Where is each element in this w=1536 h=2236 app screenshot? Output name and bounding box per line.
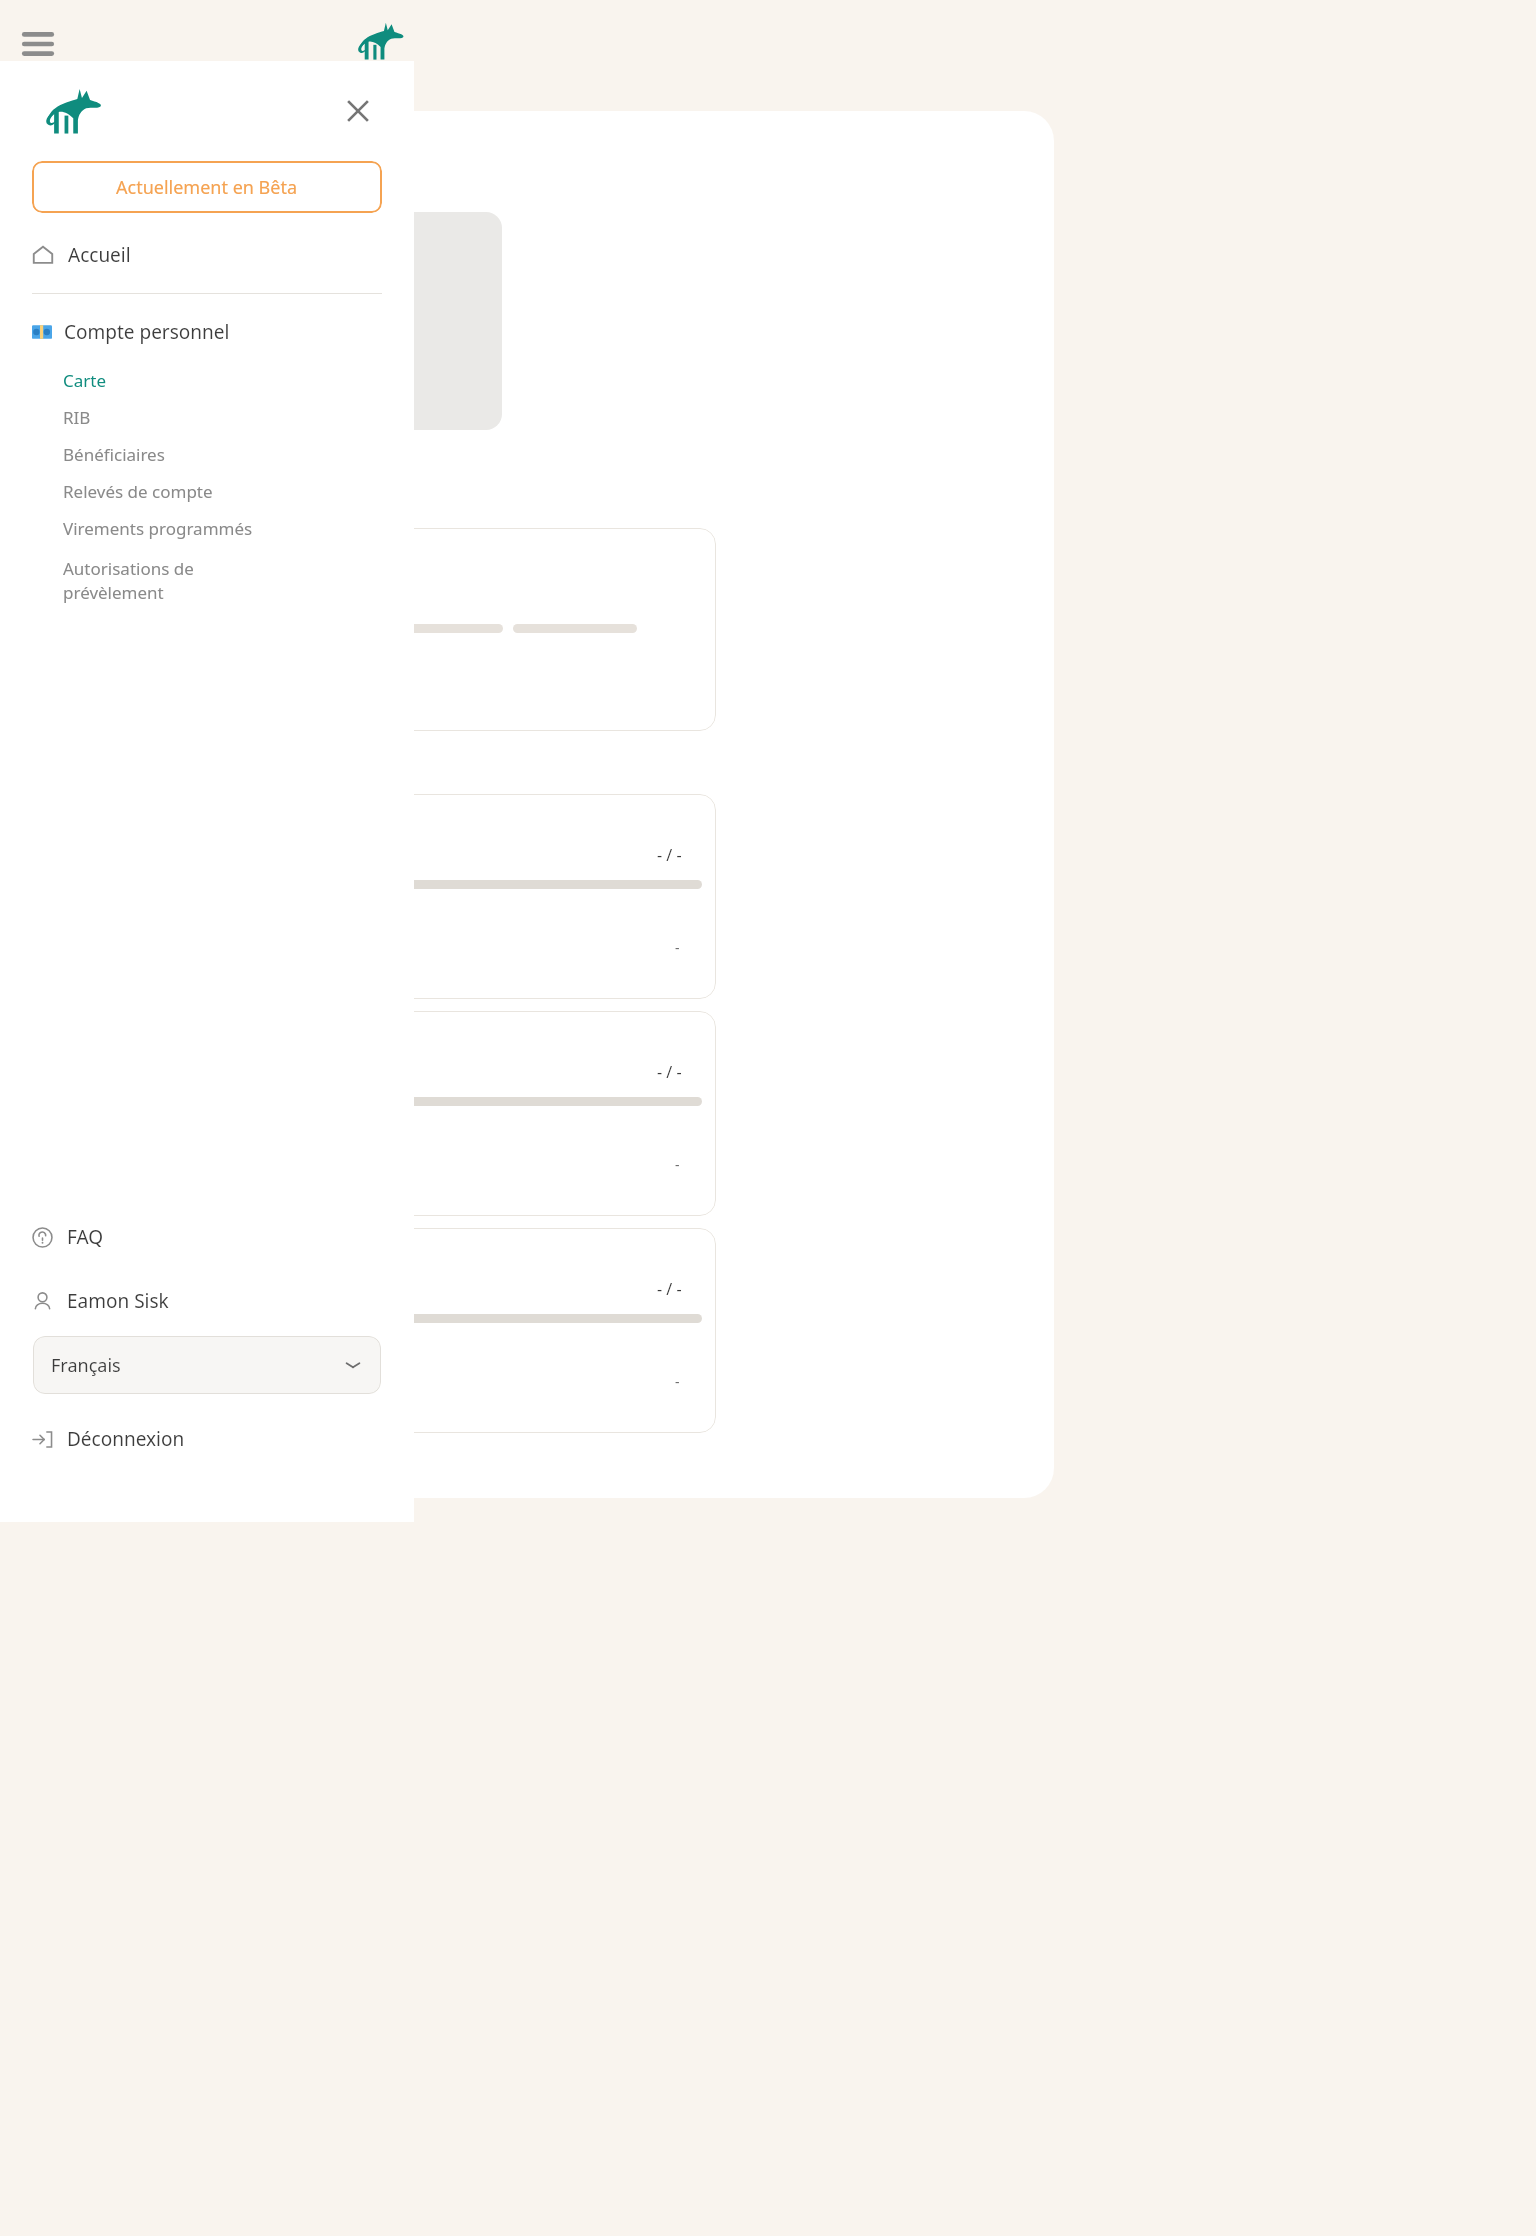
button[interactable]: Français (33, 1336, 381, 1394)
staticText: Relevés de compte (63, 480, 213, 503)
button[interactable]: Déconnexion (32, 1416, 414, 1462)
staticText: Autorisations de prévèlement (63, 557, 194, 604)
button[interactable]: Actuellement en Bêta (32, 161, 382, 213)
button[interactable]: Close menu (340, 93, 376, 129)
staticText: RIB (63, 406, 91, 429)
button[interactable]: Bénéficiaires (0, 436, 414, 473)
staticText: - (675, 1372, 680, 1391)
button[interactable]: Compte personnel (32, 310, 414, 354)
staticText: Virements programmés (63, 517, 253, 540)
button[interactable]: Open menu (16, 22, 60, 66)
button[interactable]: Eamon Sisk (32, 1278, 414, 1324)
staticText: - (675, 938, 680, 957)
button[interactable]: - / - (200, 1228, 716, 1433)
button[interactable]: Accueil (32, 231, 414, 279)
staticText: Déconnexion (67, 1426, 185, 1452)
button[interactable]: - / - (200, 1011, 716, 1216)
button[interactable]: Carte (0, 362, 414, 399)
button[interactable] (200, 528, 716, 731)
staticText: - / - (657, 844, 682, 866)
button[interactable]: FAQ (32, 1214, 414, 1260)
button[interactable]: RIB (0, 399, 414, 436)
staticText: FAQ (67, 1224, 104, 1250)
staticText: Bénéficiaires (63, 443, 165, 466)
staticText: Eamon Sisk (67, 1288, 169, 1314)
button[interactable]: Virements programmés (0, 510, 414, 547)
button[interactable]: Relevés de compte (0, 473, 414, 510)
staticText: Actuellement en Bêta (116, 175, 298, 200)
staticText: Accueil (68, 242, 131, 268)
button[interactable]: - / - (200, 794, 716, 999)
staticText: - (675, 1155, 680, 1174)
staticText: Carte (63, 369, 107, 392)
staticText: Français (51, 1353, 121, 1378)
staticText: - / - (657, 1278, 682, 1300)
staticText: - / - (657, 1061, 682, 1083)
staticText: Compte personnel (64, 319, 230, 345)
button[interactable]: Autorisations de prévèlement (0, 547, 414, 613)
